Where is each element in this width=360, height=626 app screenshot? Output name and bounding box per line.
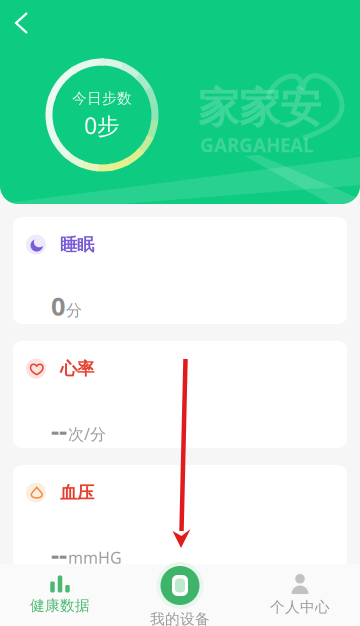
- staticText: GARGAHEAL: [200, 133, 313, 157]
- button[interactable]: 我的设备: [120, 564, 240, 626]
- button[interactable]: Back: [7, 7, 39, 39]
- staticText: 今日步数: [72, 89, 132, 107]
- staticText: 0步: [84, 110, 120, 141]
- staticText: 我的设备: [150, 610, 210, 626]
- staticText: 睡眠: [60, 234, 94, 255]
- staticText: 心率: [60, 358, 94, 379]
- staticText: --: [51, 413, 67, 447]
- button[interactable]: 个人中心: [240, 564, 360, 626]
- staticText: 家家安: [198, 83, 321, 133]
- staticText: 分: [66, 300, 82, 320]
- staticText: 次/分: [68, 423, 106, 444]
- button[interactable]: 健康数据: [0, 564, 120, 626]
- staticText: 健康数据: [30, 596, 90, 614]
- staticText: 血压: [60, 482, 94, 503]
- staticText: 个人中心: [270, 598, 330, 616]
- staticText: --: [51, 537, 67, 571]
- staticText: 0: [51, 289, 65, 323]
- staticText: mmHG: [68, 547, 122, 568]
